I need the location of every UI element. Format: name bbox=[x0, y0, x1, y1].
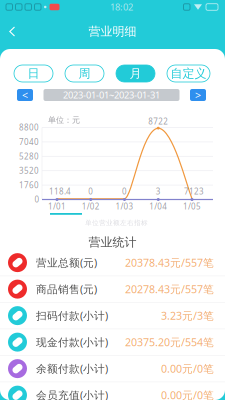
staticText: 3.23元/3笔 bbox=[161, 308, 214, 323]
staticText: 0 bbox=[34, 194, 39, 205]
staticText: 20278.43元/557笔 bbox=[125, 282, 214, 296]
staticText: 2023-01-01~2023-01-31 bbox=[63, 89, 160, 101]
staticText: 月 bbox=[129, 66, 141, 81]
staticText: > bbox=[195, 88, 201, 102]
staticText: 3 bbox=[156, 186, 161, 197]
staticText: 扫码付款(小计) bbox=[36, 308, 108, 323]
staticText: 8722 bbox=[148, 116, 168, 127]
button[interactable]: 扫码付款(小计) bbox=[0, 303, 225, 329]
button[interactable]: 会员充值(小计) bbox=[0, 382, 225, 400]
staticText: 1/04 bbox=[149, 201, 167, 212]
staticText: 日 bbox=[27, 66, 39, 81]
staticText: 会员充值(小计) bbox=[36, 388, 108, 400]
staticText: 20375.20元/554笔 bbox=[125, 335, 214, 349]
staticText: 单位营业额左右指标 bbox=[85, 219, 148, 227]
button[interactable]: 余额付款(小计) bbox=[0, 356, 225, 382]
staticText: 18:02 bbox=[110, 1, 133, 13]
button[interactable]: 周 bbox=[65, 65, 104, 82]
staticText: 0.00元/0笔 bbox=[161, 361, 214, 376]
staticText: 营业明细 bbox=[88, 24, 136, 39]
staticText: 1/02 bbox=[82, 201, 100, 212]
button[interactable]: 日 bbox=[14, 65, 53, 82]
button[interactable]: 现金付款(小计) bbox=[0, 329, 225, 356]
staticText: 现金付款(小计) bbox=[36, 335, 108, 349]
button[interactable]: 上一期 bbox=[17, 89, 33, 101]
staticText: 118.4 bbox=[49, 186, 71, 197]
staticText: 8800 bbox=[19, 122, 39, 133]
staticText: < bbox=[22, 88, 28, 102]
staticText: 7040 bbox=[19, 137, 39, 147]
button[interactable]: 返回 bbox=[0, 18, 27, 44]
staticText: 商品销售(元) bbox=[36, 282, 97, 296]
staticText: 20378.43元/557笔 bbox=[125, 255, 214, 270]
button[interactable]: 自定义 bbox=[167, 65, 210, 82]
staticText: 1/01 bbox=[48, 201, 66, 212]
staticText: 单位：元 bbox=[48, 115, 80, 125]
button[interactable]: 下一期 bbox=[190, 89, 206, 101]
button[interactable]: 营业总额(元) bbox=[0, 250, 225, 276]
staticText: 5280 bbox=[19, 151, 39, 162]
button[interactable]: 2023-01-01~2023-01-31 bbox=[43, 89, 179, 101]
button[interactable]: 月 bbox=[116, 65, 155, 82]
staticText: 1760 bbox=[19, 180, 39, 190]
staticText: 余额付款(小计) bbox=[36, 361, 108, 376]
staticText: 周 bbox=[78, 66, 90, 81]
staticText: 营业总额(元) bbox=[36, 255, 97, 270]
staticText: 1/03 bbox=[115, 201, 133, 212]
staticText: 7123 bbox=[184, 186, 204, 197]
staticText: 0 bbox=[122, 186, 127, 197]
staticText: 自定义 bbox=[170, 66, 206, 81]
staticText: 营业统计 bbox=[88, 235, 136, 250]
staticText: 1/05 bbox=[183, 201, 201, 212]
button[interactable]: 商品销售(元) bbox=[0, 276, 225, 303]
staticText: 0 bbox=[88, 186, 93, 197]
staticText: 3520 bbox=[19, 165, 39, 176]
staticText: 0.00元/0笔 bbox=[161, 388, 214, 400]
